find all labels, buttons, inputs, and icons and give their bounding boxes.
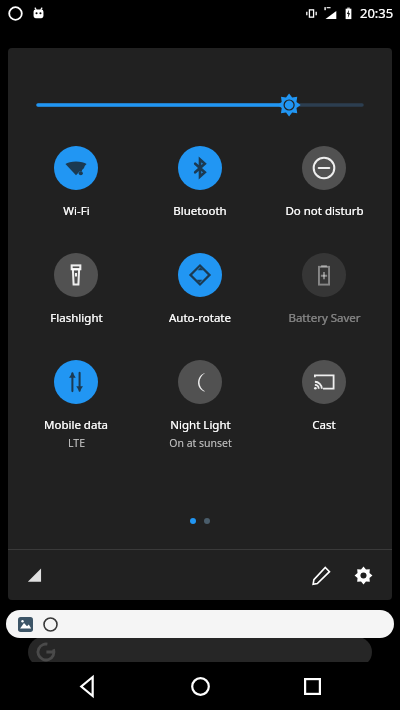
button[interactable]: Do not disturb: [268, 146, 380, 219]
staticText: Mobile data: [44, 417, 108, 433]
staticText: Auto-rotate: [169, 310, 231, 326]
staticText: Battery Saver: [288, 310, 361, 326]
button[interactable]: Night Light: [144, 360, 256, 450]
button[interactable]: Edit tiles: [304, 558, 338, 592]
button[interactable]: Signal status: [20, 560, 50, 590]
button[interactable]: [6, 610, 394, 638]
button[interactable]: Mobile data: [20, 360, 132, 450]
button[interactable]: Battery Saver: [268, 253, 380, 326]
staticText: Wi-Fi: [63, 203, 90, 219]
button[interactable]: Auto-rotate: [144, 253, 256, 326]
staticText: LTE: [68, 436, 85, 450]
button[interactable]: Brightness: [38, 90, 362, 120]
staticText: Flashlight: [50, 310, 103, 326]
staticText: Cast: [312, 417, 336, 433]
button[interactable]: Home: [176, 662, 224, 710]
staticText: Bluetooth: [173, 203, 227, 219]
staticText: Night Light: [170, 417, 231, 433]
staticText: 20:35: [360, 4, 394, 22]
button[interactable]: Back: [64, 662, 112, 710]
staticText: Do not disturb: [285, 203, 364, 219]
button[interactable]: Bluetooth: [144, 146, 256, 219]
button[interactable]: Recent apps: [288, 662, 336, 710]
staticText: On at sunset: [169, 436, 232, 450]
button[interactable]: Flashlight: [20, 253, 132, 326]
button[interactable]: [28, 637, 372, 667]
button[interactable]: Settings: [346, 558, 380, 592]
button[interactable]: Cast: [268, 360, 380, 433]
button[interactable]: Wi-Fi: [20, 146, 132, 219]
